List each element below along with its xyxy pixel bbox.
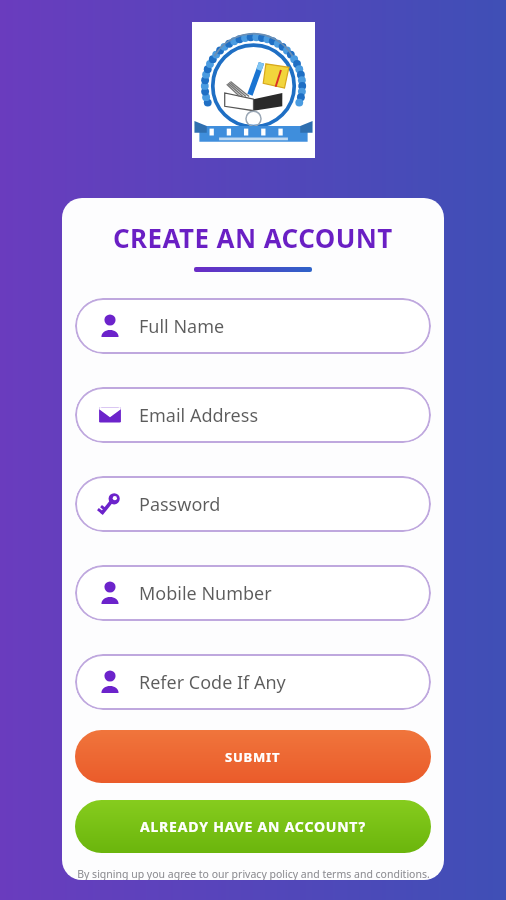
button[interactable]: Mobile Number xyxy=(75,565,431,621)
button[interactable]: Email Address xyxy=(75,387,431,443)
staticText: SUBMIT xyxy=(225,748,281,766)
staticText: CREATE AN ACCOUNT xyxy=(113,220,393,255)
button[interactable]: SUBMIT xyxy=(75,730,431,783)
staticText: Full Name xyxy=(139,314,225,339)
staticText: Email Address xyxy=(139,403,259,428)
staticText: ALREADY HAVE AN ACCOUNT? xyxy=(140,817,366,836)
button[interactable]: Refer Code If Any xyxy=(75,654,431,710)
button[interactable]: ALREADY HAVE AN ACCOUNT? xyxy=(75,800,431,853)
staticText: Refer Code If Any xyxy=(139,670,286,695)
staticText: Password xyxy=(139,492,221,517)
button[interactable]: Full Name xyxy=(75,298,431,354)
button[interactable]: Password xyxy=(75,476,431,532)
staticText: By signing up you agree to our privacy p… xyxy=(77,867,430,880)
staticText: Mobile Number xyxy=(139,581,272,606)
